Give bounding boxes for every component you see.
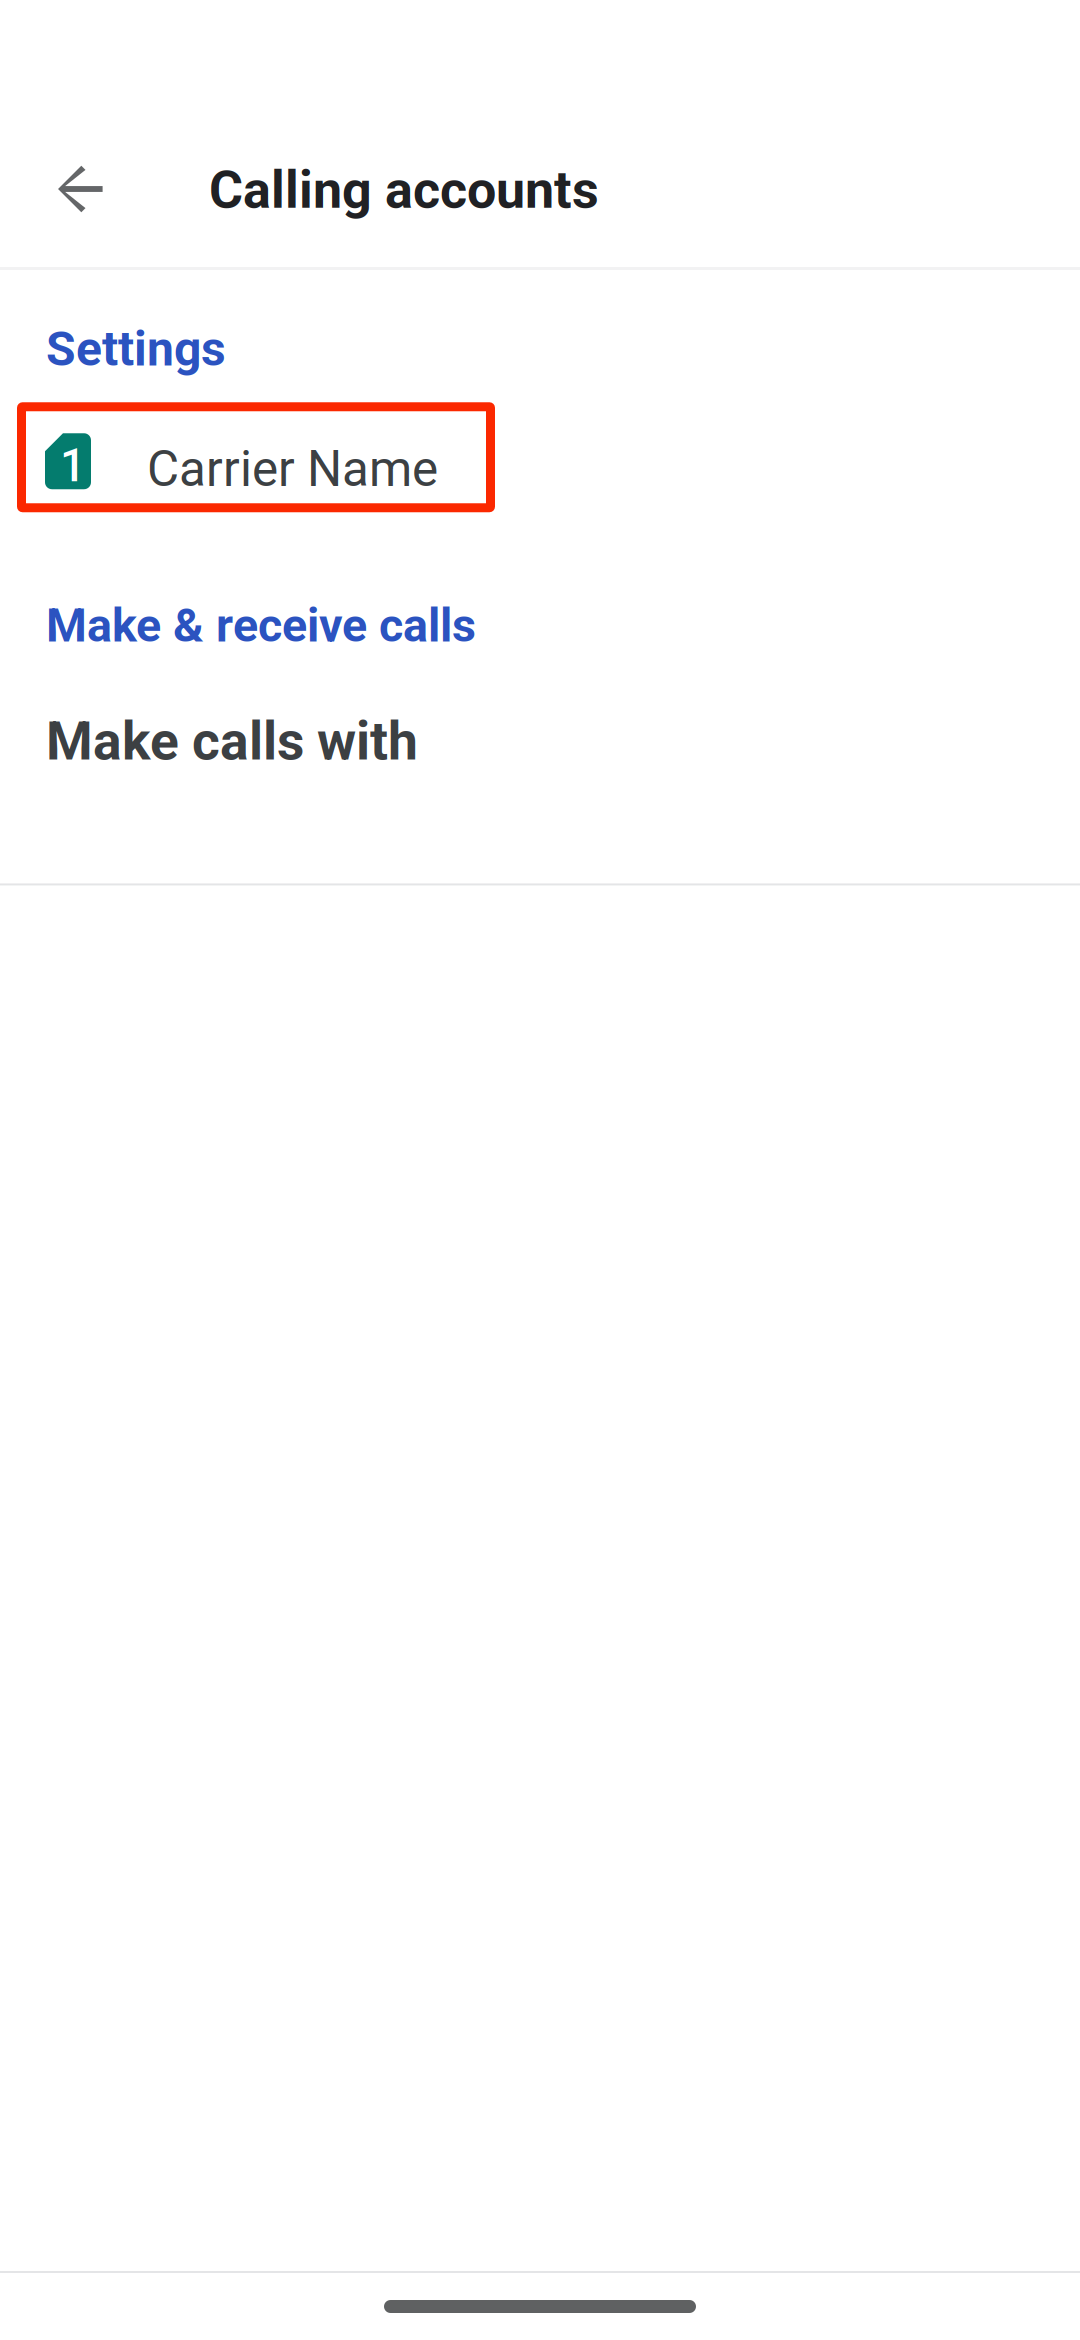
button[interactable]: Back xyxy=(24,133,136,245)
staticText: Settings xyxy=(46,321,226,377)
button[interactable]: Carrier Name, SIM 1 xyxy=(17,402,495,512)
staticText: Calling accounts xyxy=(209,159,599,220)
staticText: Make & receive calls xyxy=(46,598,476,653)
staticText: Make calls with xyxy=(46,710,418,772)
staticText: Carrier Name xyxy=(147,440,438,498)
